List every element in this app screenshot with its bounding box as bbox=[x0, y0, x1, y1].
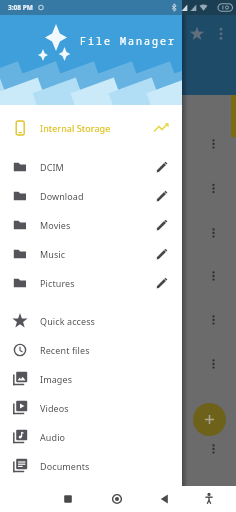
button[interactable]: Documents bbox=[0, 451, 182, 480]
button[interactable]: Pictures bbox=[0, 268, 182, 297]
button[interactable] bbox=[94, 486, 140, 512]
staticText: DCIM bbox=[40, 161, 64, 173]
staticText: Download bbox=[40, 190, 84, 202]
staticText: Documents bbox=[40, 460, 90, 472]
button[interactable]: Download bbox=[0, 181, 182, 210]
staticText: File Manager bbox=[79, 34, 175, 48]
staticText: Internal Storage bbox=[40, 122, 111, 134]
button[interactable] bbox=[141, 486, 187, 512]
staticText: Recent files bbox=[40, 344, 90, 356]
staticText: Quick access bbox=[40, 315, 95, 327]
button[interactable]: Recent files bbox=[0, 335, 182, 364]
button[interactable]: Images bbox=[0, 364, 182, 393]
button[interactable]: Movies bbox=[0, 210, 182, 239]
button[interactable]: Audio bbox=[0, 422, 182, 451]
staticText: 3:08 PM bbox=[8, 3, 33, 12]
staticText: Images bbox=[40, 373, 73, 385]
staticText: Audio bbox=[40, 431, 66, 443]
button[interactable]: DCIM bbox=[0, 152, 182, 181]
staticText: Music bbox=[40, 248, 66, 260]
staticText: Movies bbox=[40, 219, 71, 231]
button[interactable]: Videos bbox=[0, 393, 182, 422]
button[interactable]: Music bbox=[0, 239, 182, 268]
button[interactable]: Quick access bbox=[0, 306, 182, 335]
button[interactable] bbox=[193, 403, 226, 436]
button[interactable]: Internal Storage bbox=[0, 105, 182, 150]
staticText: Videos bbox=[40, 402, 69, 414]
button[interactable] bbox=[45, 486, 91, 512]
staticText: Pictures bbox=[40, 277, 75, 289]
button[interactable] bbox=[186, 486, 232, 512]
